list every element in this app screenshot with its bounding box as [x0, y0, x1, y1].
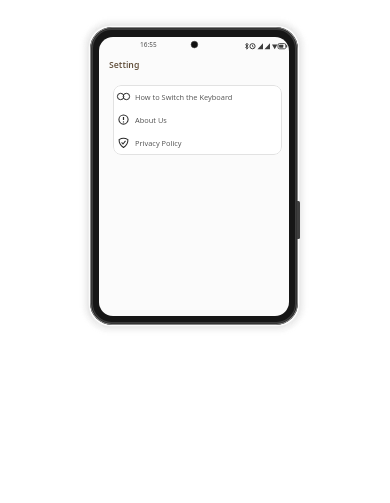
- staticText: Privacy Policy: [135, 138, 182, 148]
- staticText: Setting: [109, 59, 140, 71]
- staticText: How to Switch the Keyboard: [135, 92, 233, 102]
- button[interactable]: How to Switch the Keyboard: [113, 85, 282, 108]
- button[interactable]: About Us: [113, 108, 282, 131]
- staticText: 16:55: [140, 40, 157, 49]
- staticText: About Us: [135, 115, 167, 125]
- button[interactable]: Privacy Policy: [113, 131, 282, 154]
